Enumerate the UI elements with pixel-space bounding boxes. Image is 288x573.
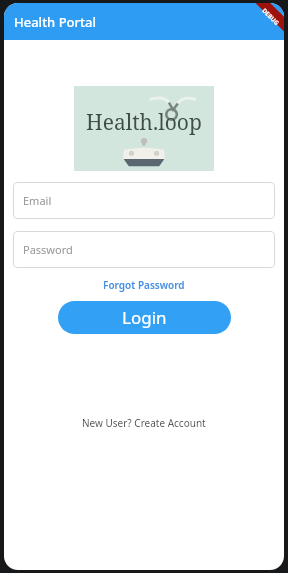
staticText: Email — [23, 193, 52, 208]
button[interactable]: Password — [13, 231, 275, 268]
staticText: Forgot Password — [103, 278, 185, 292]
staticText: Password — [23, 242, 73, 257]
other: Debug banner — [238, 3, 284, 49]
staticText: New User? Create Account — [82, 416, 206, 430]
staticText: Health.loop — [86, 108, 202, 137]
button[interactable]: Email — [13, 182, 275, 219]
other: Health.loop logo — [74, 86, 214, 171]
button[interactable]: Login — [58, 301, 231, 334]
button[interactable]: Health Portal — [4, 7, 106, 37]
button[interactable]: New User? Create Account — [77, 414, 211, 432]
button[interactable]: Forgot Password — [98, 276, 190, 294]
staticText: DEBUG — [260, 7, 281, 27]
staticText: Health Portal — [14, 13, 96, 31]
staticText: Login — [122, 306, 167, 329]
